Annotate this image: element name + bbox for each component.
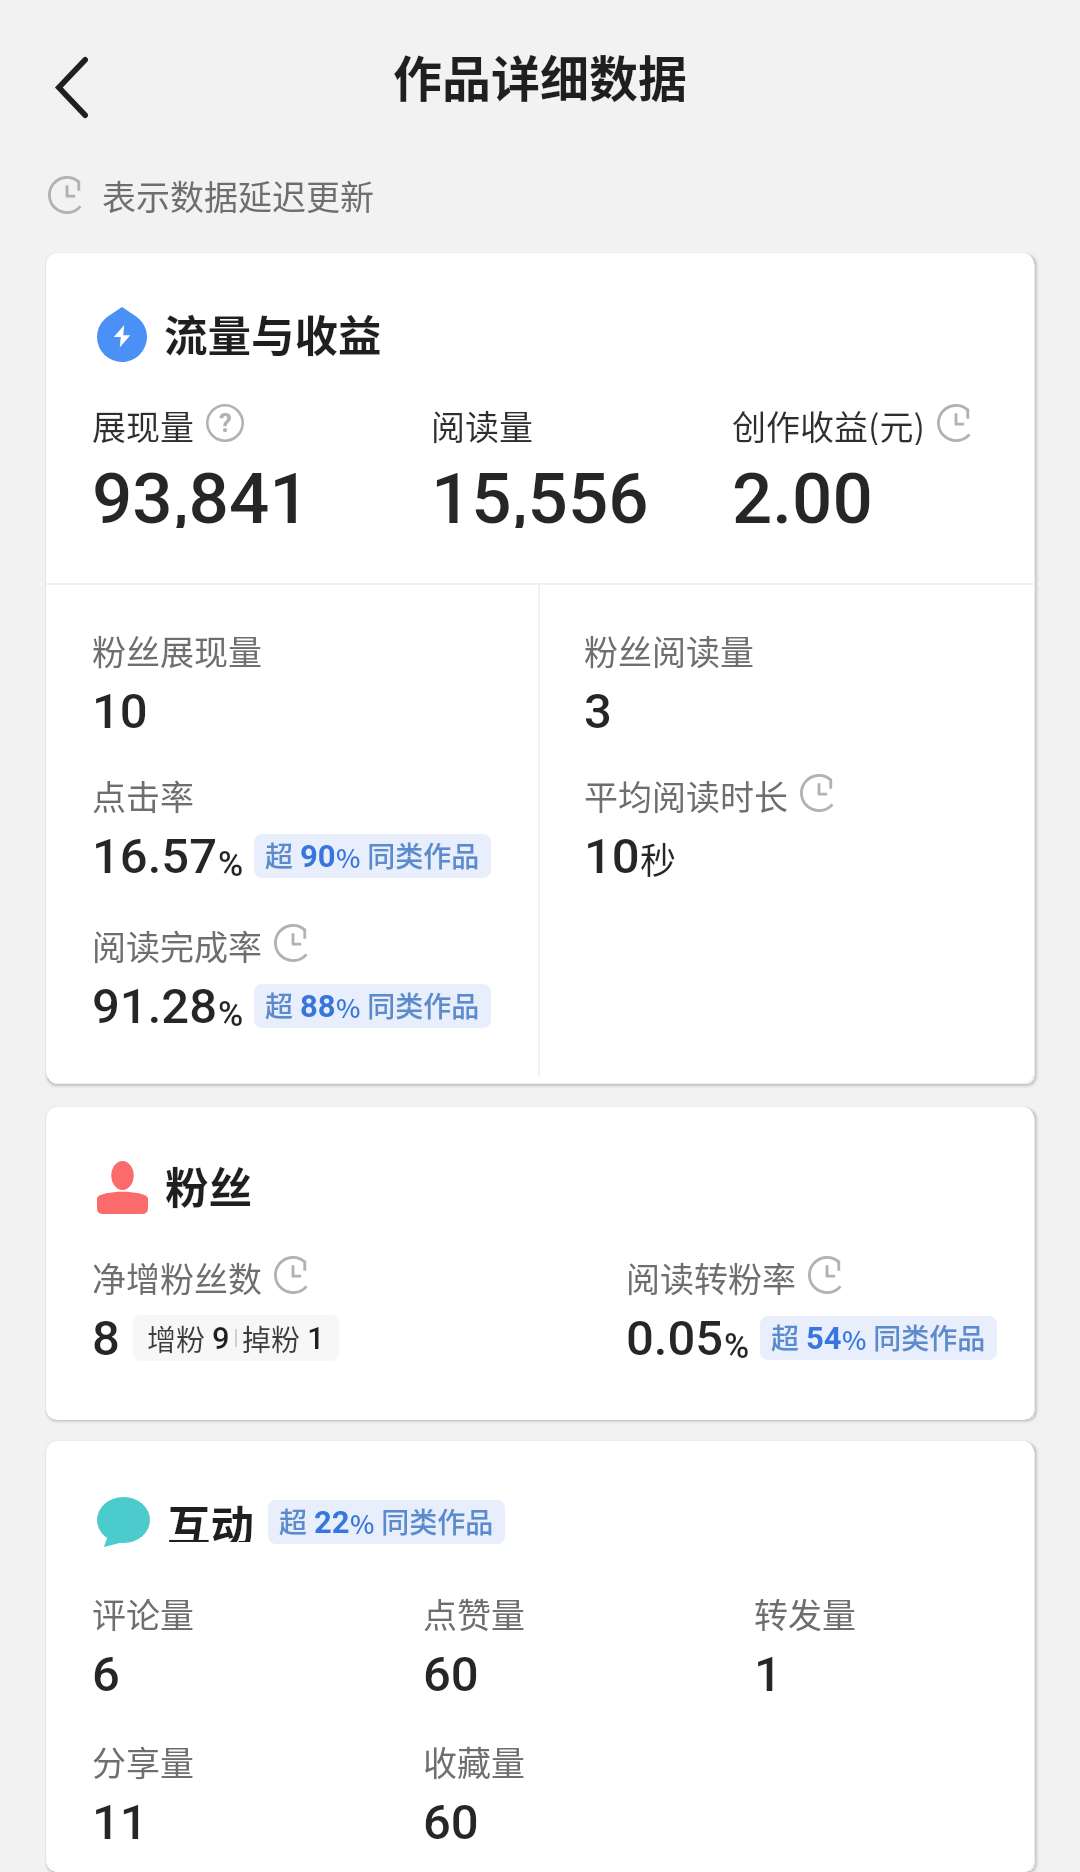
staticText: 同类作品	[375, 1501, 494, 1542]
staticText: 22	[314, 1504, 350, 1540]
staticText: 15,556	[431, 457, 649, 528]
staticText: 增粉	[147, 1317, 212, 1359]
staticText: 10	[92, 683, 148, 740]
staticText: 转发量	[754, 1589, 856, 1633]
staticText: 1	[307, 1320, 325, 1356]
staticText: %	[336, 838, 361, 876]
staticText: 流量与收益	[164, 302, 382, 357]
staticText: %	[336, 988, 361, 1026]
staticText: 净增粉丝数	[92, 1253, 262, 1297]
staticText: 超	[265, 835, 300, 876]
staticText: 评论量	[92, 1589, 194, 1633]
staticText: 11	[92, 1794, 148, 1851]
staticText: 88	[300, 988, 336, 1024]
staticText: 91.28	[92, 978, 218, 1035]
staticText: 创作收益(元)	[732, 401, 925, 445]
staticText: 秒	[640, 832, 677, 884]
staticText: 粉丝阅读量	[584, 626, 754, 670]
staticText: 93,841	[92, 457, 310, 528]
staticText: 超	[771, 1317, 806, 1358]
staticText: 1	[754, 1646, 782, 1703]
button[interactable]: Back	[29, 44, 115, 130]
staticText: 互动	[167, 1492, 254, 1542]
staticText: 3	[584, 683, 612, 740]
staticText: 超	[265, 985, 300, 1026]
staticText: 90	[300, 838, 336, 874]
staticText: %	[842, 1320, 867, 1358]
staticText: 表示数据延迟更新	[102, 171, 374, 220]
staticText: %	[350, 1504, 375, 1542]
staticText: ?	[219, 408, 232, 438]
staticText: 9	[212, 1320, 230, 1356]
staticText: 超	[279, 1501, 314, 1542]
staticText: 2.00	[732, 457, 873, 528]
staticText: 60	[423, 1794, 479, 1851]
staticText: 分享量	[92, 1737, 194, 1781]
staticText: 粉丝	[165, 1154, 252, 1210]
staticText: 10	[584, 828, 640, 885]
staticText: 16.57	[92, 828, 218, 885]
staticText: 粉丝展现量	[92, 626, 262, 670]
staticText: 阅读完成率	[92, 921, 262, 965]
staticText: 收藏量	[423, 1737, 525, 1781]
staticText: 60	[423, 1646, 479, 1703]
staticText: 同类作品	[867, 1317, 986, 1358]
staticText: 作品详细数据	[393, 40, 688, 111]
staticText: 掉粉	[242, 1317, 307, 1359]
staticText: 点击率	[92, 771, 194, 815]
staticText: 8	[92, 1310, 120, 1367]
staticText: %	[724, 1326, 750, 1366]
staticText: 平均阅读时长	[584, 771, 788, 815]
staticText: 同类作品	[361, 835, 480, 876]
staticText: 0.05	[626, 1310, 724, 1367]
staticText: 阅读转粉率	[626, 1253, 796, 1297]
staticText: 6	[92, 1646, 120, 1703]
staticText: 阅读量	[431, 401, 533, 445]
staticText: %	[218, 844, 244, 884]
staticText: %	[218, 994, 244, 1034]
staticText: 展现量	[92, 401, 194, 445]
staticText: 54	[806, 1320, 842, 1356]
staticText: 点赞量	[423, 1589, 525, 1633]
staticText: 同类作品	[361, 985, 480, 1026]
